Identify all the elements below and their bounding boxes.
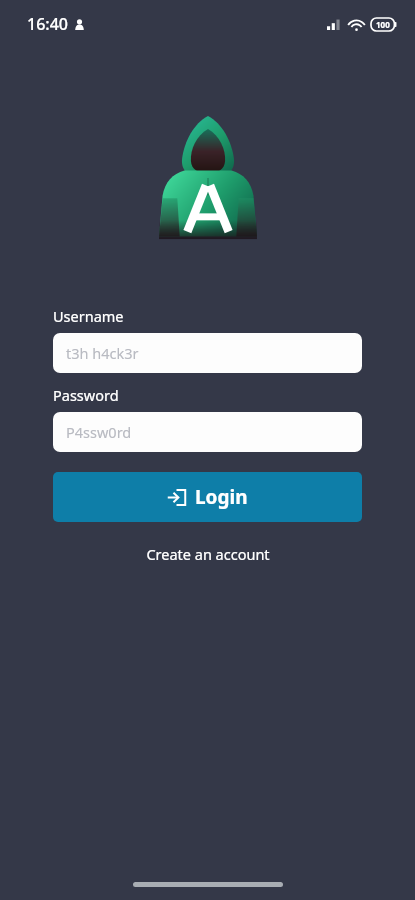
button[interactable]: Login [53, 472, 362, 522]
staticText: P4ssw0rd [66, 422, 132, 442]
staticText: 100 [376, 19, 390, 30]
staticText: 16:40 [27, 13, 68, 35]
button[interactable]: Create an account [53, 540, 362, 568]
staticText: t3h h4ck3r [66, 343, 139, 363]
staticText: Password [53, 385, 119, 405]
staticText: Create an account [146, 544, 270, 564]
button[interactable]: t3h h4ck3r [53, 333, 362, 373]
staticText: Username [53, 306, 124, 326]
button[interactable]: P4ssw0rd [53, 412, 362, 452]
staticText: Login [195, 484, 248, 510]
